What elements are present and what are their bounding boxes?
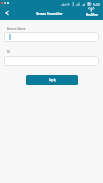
staticText: Beacon Name bbox=[7, 27, 26, 31]
button[interactable]: NodVine logo bbox=[85, 7, 98, 16]
staticText: ID bbox=[7, 50, 10, 54]
staticText: 6:40 bbox=[93, 2, 100, 7]
button[interactable]: Navigate up bbox=[1, 7, 12, 18]
staticText: Apply bbox=[49, 78, 56, 82]
button[interactable] bbox=[4, 56, 99, 66]
staticText: NodVine bbox=[86, 13, 98, 17]
button[interactable] bbox=[4, 32, 99, 42]
staticText: Beacon Transmitter bbox=[0, 12, 101, 16]
button[interactable]: Apply bbox=[26, 75, 78, 85]
